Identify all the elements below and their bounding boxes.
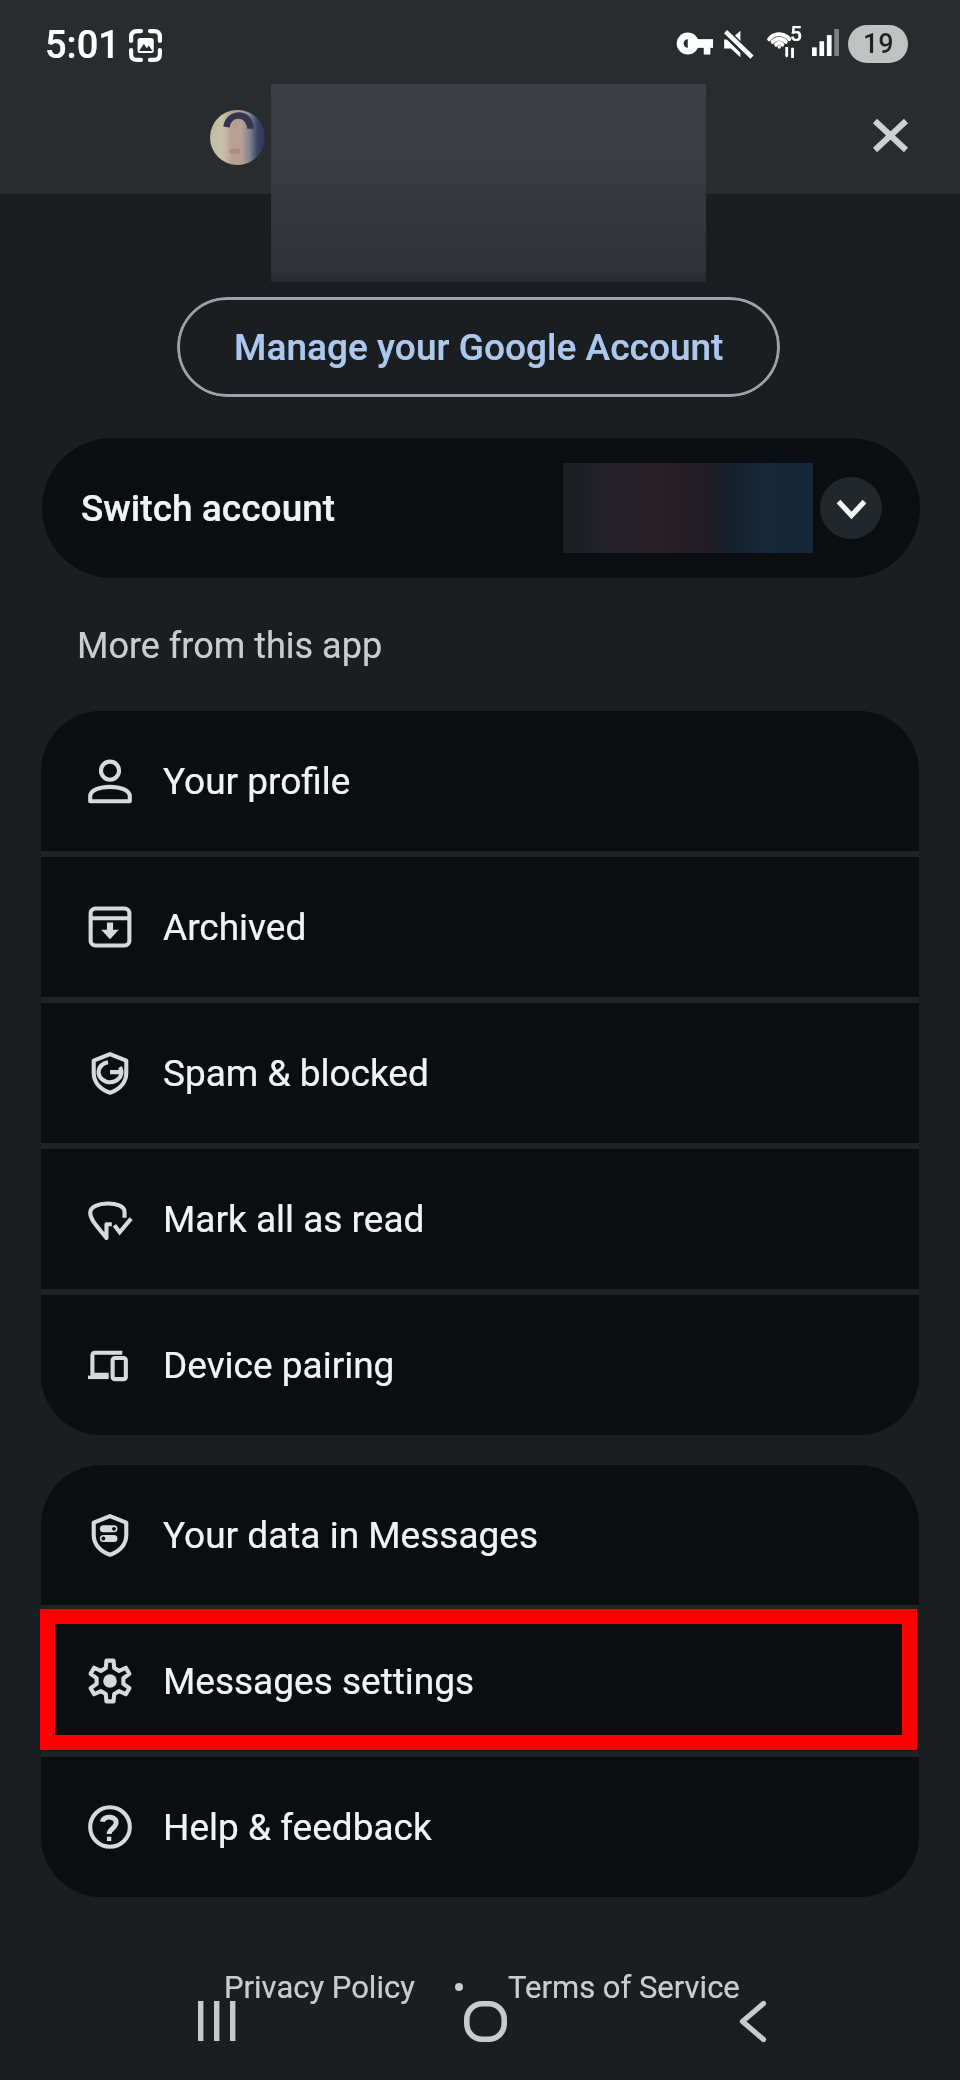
staticText: Help & feedback	[163, 1806, 432, 1849]
button[interactable]: Manage your Google Account	[177, 297, 780, 397]
button[interactable]: Device pairing	[41, 1295, 919, 1435]
staticText: Spam & blocked	[163, 1052, 429, 1095]
staticText: 19	[863, 28, 894, 60]
staticText: Your data in Messages	[163, 1514, 539, 1557]
staticText: Your profile	[163, 760, 351, 803]
button[interactable]: Account avatar	[210, 110, 265, 165]
button[interactable]: Archived	[41, 857, 919, 997]
button[interactable]: Back	[710, 1978, 796, 2064]
staticText: More from this app	[77, 625, 383, 667]
staticText: Manage your Google Account	[234, 326, 724, 369]
button[interactable]: Help & feedback	[41, 1757, 919, 1897]
button[interactable]: Switch account	[42, 438, 920, 578]
staticText: Device pairing	[163, 1344, 395, 1387]
button[interactable]: Your profile	[41, 711, 919, 851]
button[interactable]: Terms of Service	[508, 1969, 740, 2005]
button[interactable]: Recent apps	[175, 1978, 261, 2064]
button[interactable]: Messages settings	[41, 1611, 919, 1751]
staticText: Mark all as read	[163, 1198, 425, 1241]
staticText: 5:01	[45, 23, 120, 68]
staticText: Messages settings	[163, 1660, 475, 1703]
staticText: Switch account	[81, 487, 336, 530]
button[interactable]: Privacy Policy	[224, 1969, 415, 2005]
button[interactable]: Spam & blocked	[41, 1003, 919, 1143]
button[interactable]: Mark all as read	[41, 1149, 919, 1289]
staticText: 5	[790, 22, 802, 47]
staticText: Archived	[163, 906, 307, 949]
button[interactable]: Home	[442, 1978, 528, 2064]
button[interactable]: Close	[846, 91, 934, 179]
button[interactable]: Your data in Messages	[41, 1465, 919, 1605]
